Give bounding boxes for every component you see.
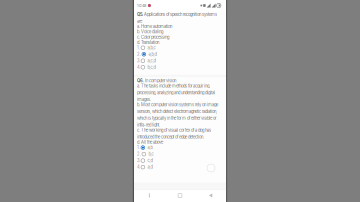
staticText: 1. — [137, 45, 140, 50]
button[interactable]: 1. — [137, 45, 223, 51]
staticText: b,c — [148, 152, 153, 157]
staticText: c. Color processing — [137, 35, 169, 40]
staticText: 4. — [137, 165, 140, 170]
staticText: 4. — [137, 65, 140, 70]
button[interactable]: 3. — [137, 157, 223, 164]
staticText: a,c,d — [147, 58, 155, 63]
staticText: b,c,d — [147, 65, 155, 70]
staticText: c. The working of visual cortex of a dog… — [137, 128, 211, 139]
staticText: c,d — [147, 158, 152, 163]
staticText: a,b,c — [147, 45, 155, 50]
staticText: 3. — [137, 158, 140, 163]
button[interactable]: 4. — [137, 164, 223, 170]
button[interactable]: Home — [165, 194, 195, 197]
staticText: d. Translation — [137, 40, 159, 45]
staticText: a,b,d — [148, 52, 156, 57]
button[interactable]: Scroll indicator — [207, 164, 215, 172]
button[interactable]: 2. — [137, 151, 223, 157]
button[interactable]: 4. — [137, 64, 223, 70]
staticText: a,b — [147, 145, 152, 150]
staticText: 1. — [137, 145, 140, 150]
staticText: 2. — [137, 52, 141, 57]
staticText: 2. — [137, 152, 141, 157]
staticText: a. Home automation — [137, 24, 172, 29]
button[interactable]: 1. — [137, 144, 223, 151]
staticText: d. All the above — [137, 140, 163, 145]
staticText: 10:48 — [137, 3, 146, 8]
button[interactable]: Back — [195, 193, 226, 198]
button[interactable]: Recent apps — [134, 193, 165, 198]
staticText: Q5. Applications of speech recognition s… — [137, 12, 217, 24]
staticText: 3. — [137, 58, 140, 63]
staticText: b. Most computer vision systems rely on … — [137, 102, 218, 127]
staticText: a,d — [147, 165, 152, 170]
staticText: a. The tasks include methods for acquiri… — [137, 83, 215, 102]
staticText: Q6. In computer vision — [137, 78, 176, 83]
staticText: b. Voice dialing — [137, 29, 163, 34]
button[interactable]: 3. — [137, 58, 223, 64]
button[interactable]: 2. — [137, 51, 223, 57]
